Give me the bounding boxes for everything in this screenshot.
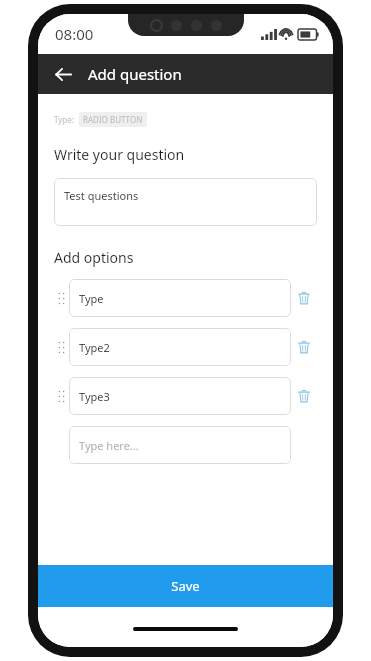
staticText: Type (79, 291, 104, 306)
button[interactable]: Type here... (69, 426, 291, 464)
staticText: RADIO BUTTON (83, 114, 143, 125)
button[interactable]: Reorder option (54, 332, 69, 362)
staticText: Type2 (79, 340, 110, 355)
staticText: Type: (54, 114, 74, 125)
button[interactable]: Save (38, 565, 333, 607)
button[interactable]: Type2 (69, 328, 291, 366)
button[interactable]: Delete option (291, 283, 317, 313)
button[interactable]: Test questions (54, 178, 317, 226)
button[interactable]: Reorder option (54, 283, 69, 313)
staticText: Add question (88, 64, 182, 84)
staticText: Type3 (79, 389, 110, 404)
staticText: Write your question (54, 145, 185, 164)
staticText: Type here... (79, 438, 139, 453)
button[interactable]: Delete option (291, 332, 317, 362)
staticText: Save (171, 577, 200, 595)
button[interactable]: Reorder option (54, 381, 69, 411)
staticText: 08:00 (55, 24, 94, 44)
button[interactable]: Back (46, 57, 80, 91)
staticText: Test questions (64, 188, 139, 203)
staticText: Add options (54, 248, 134, 267)
button[interactable]: Type3 (69, 377, 291, 415)
button[interactable]: Delete option (291, 381, 317, 411)
button[interactable]: Type (69, 279, 291, 317)
